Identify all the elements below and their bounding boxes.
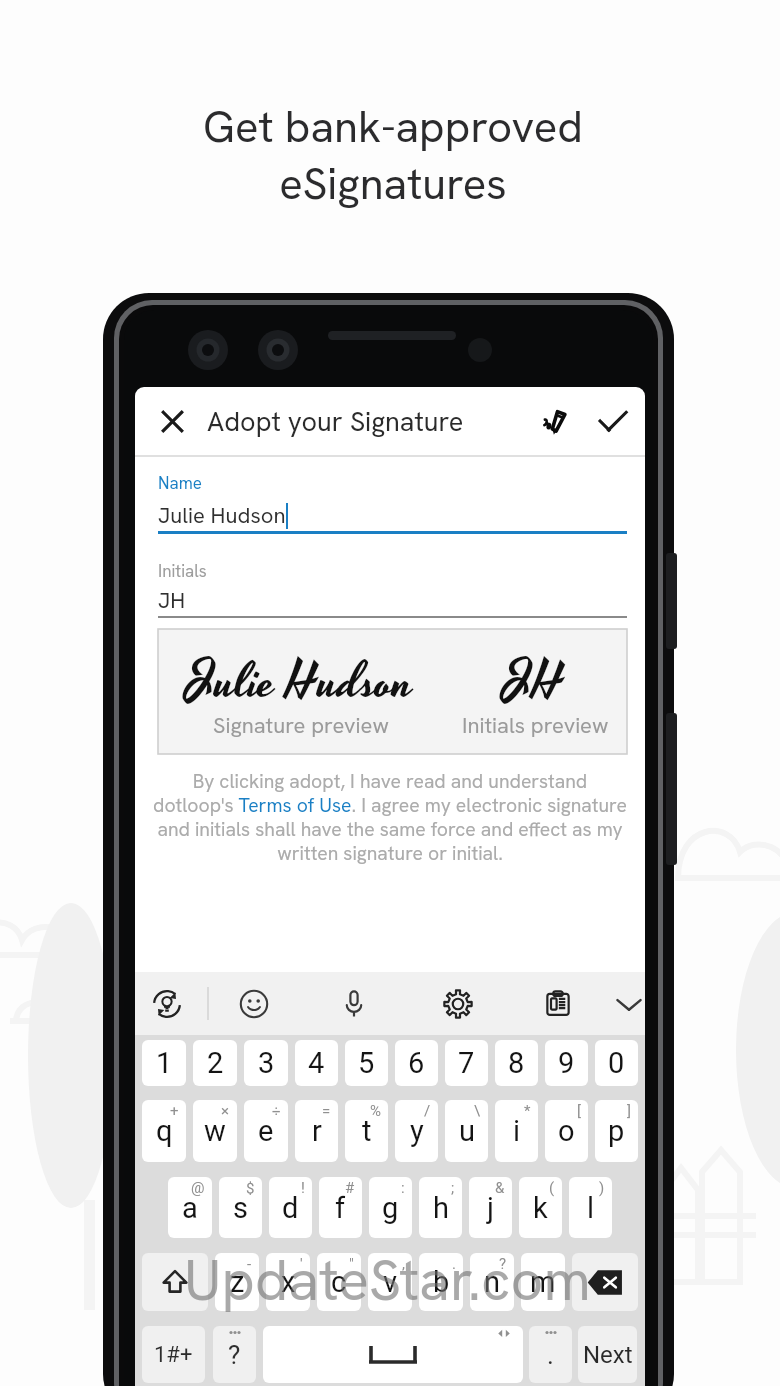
button[interactable]: m: [521, 1253, 565, 1311]
staticText: 9: [558, 1046, 575, 1080]
button[interactable]: 3: [244, 1040, 288, 1086]
staticText: 8: [508, 1046, 525, 1080]
button[interactable]: g: [369, 1177, 412, 1238]
button[interactable]: z: [215, 1253, 259, 1311]
button[interactable]: 4: [295, 1040, 338, 1086]
staticText: r: [312, 1114, 322, 1148]
button[interactable]: t: [345, 1100, 388, 1162]
button[interactable]: i: [495, 1100, 538, 1162]
staticText: +: [170, 1102, 179, 1120]
button[interactable]: c: [317, 1253, 361, 1311]
staticText: =: [322, 1102, 331, 1120]
staticText: ;: [451, 1179, 455, 1197]
staticText: m: [530, 1265, 556, 1299]
staticText: #: [345, 1179, 355, 1197]
staticText: eSignatures: [279, 155, 507, 212]
button[interactable]: 0: [595, 1040, 638, 1086]
button[interactable]: y: [395, 1100, 438, 1162]
button[interactable]: s: [219, 1177, 262, 1238]
button[interactable]: 5: [345, 1040, 388, 1086]
staticText: 2: [207, 1046, 224, 1080]
staticText: x: [281, 1265, 296, 1299]
staticText: ): [599, 1179, 605, 1197]
staticText: i: [513, 1114, 521, 1148]
staticText: Get bank-approved: [203, 98, 583, 155]
staticText: -: [247, 1255, 252, 1273]
button[interactable]: ?: [213, 1326, 256, 1383]
button[interactable]: x: [266, 1253, 310, 1311]
staticText: Name: [158, 472, 202, 494]
staticText: 4: [308, 1046, 325, 1080]
button[interactable]: 6: [395, 1040, 438, 1086]
button[interactable]: w: [193, 1100, 237, 1162]
staticText: %: [370, 1102, 381, 1120]
button[interactable]: e: [244, 1100, 288, 1162]
staticText: q: [156, 1114, 173, 1148]
button[interactable]: n: [470, 1253, 514, 1311]
button[interactable]: 1#+: [142, 1326, 205, 1383]
button[interactable]: o: [545, 1100, 588, 1162]
staticText: !: [301, 1179, 305, 1197]
button[interactable]: f: [319, 1177, 362, 1238]
button[interactable]: Close: [149, 398, 195, 444]
button[interactable]: Settings: [434, 972, 482, 1035]
button[interactable]: 8: [495, 1040, 538, 1086]
staticText: d: [282, 1191, 299, 1225]
button[interactable]: q: [142, 1100, 186, 1162]
staticText: $: [246, 1179, 255, 1197]
staticText: z: [230, 1265, 245, 1299]
staticText: .: [547, 1340, 554, 1370]
staticText: 1: [156, 1046, 173, 1080]
button[interactable]: v: [368, 1253, 412, 1311]
button[interactable]: .: [529, 1326, 572, 1383]
staticText: Julie Hudson: [158, 501, 286, 530]
staticText: t: [362, 1114, 372, 1148]
button[interactable]: d: [269, 1177, 312, 1238]
staticText: ÷: [272, 1102, 281, 1120]
button[interactable]: Hide keyboard: [605, 972, 645, 1035]
button[interactable]: j: [469, 1177, 512, 1238]
staticText: ": [349, 1255, 354, 1273]
staticText: b: [433, 1265, 450, 1299]
staticText: a: [182, 1191, 198, 1225]
button[interactable]: GIF keyboard: [143, 972, 191, 1035]
button[interactable]: Space: [263, 1326, 523, 1383]
staticText: 1#+: [154, 1342, 193, 1368]
button[interactable]: Next: [578, 1326, 637, 1383]
staticText: g: [382, 1191, 399, 1225]
staticText: k: [533, 1191, 548, 1225]
button[interactable]: a: [168, 1177, 212, 1238]
staticText: 6: [408, 1046, 425, 1080]
button[interactable]: Emoji: [230, 972, 278, 1035]
staticText: Initials: [158, 560, 207, 582]
button[interactable]: 9: [545, 1040, 588, 1086]
button[interactable]: Backspace: [572, 1253, 638, 1311]
button[interactable]: 1: [142, 1040, 186, 1086]
button[interactable]: h: [419, 1177, 462, 1238]
staticText: ×: [221, 1102, 230, 1120]
button[interactable]: l: [569, 1177, 612, 1238]
button[interactable]: Draw signature: [529, 398, 575, 444]
button[interactable]: k: [519, 1177, 562, 1238]
button[interactable]: u: [445, 1100, 488, 1162]
staticText: &: [495, 1179, 505, 1197]
staticText: l: [587, 1191, 595, 1225]
staticText: :: [401, 1179, 405, 1197]
staticText: f: [335, 1191, 346, 1225]
button[interactable]: 2: [193, 1040, 237, 1086]
button[interactable]: 7: [445, 1040, 488, 1086]
staticText: @: [191, 1179, 205, 1197]
button[interactable]: Voice input: [330, 972, 378, 1035]
staticText: w: [204, 1114, 226, 1148]
button[interactable]: Clipboard: [534, 972, 582, 1035]
staticText: By clicking adopt, I have read and under…: [150, 769, 630, 866]
button[interactable]: b: [419, 1253, 463, 1311]
button[interactable]: Shift: [142, 1253, 208, 1311]
button[interactable]: r: [295, 1100, 338, 1162]
button[interactable]: Adopt signature: [593, 401, 633, 441]
staticText: JH: [504, 646, 567, 719]
staticText: /: [424, 1102, 431, 1120]
staticText: UpdateStar.com: [184, 1243, 591, 1317]
staticText: ?: [499, 1255, 507, 1273]
button[interactable]: p: [595, 1100, 638, 1162]
